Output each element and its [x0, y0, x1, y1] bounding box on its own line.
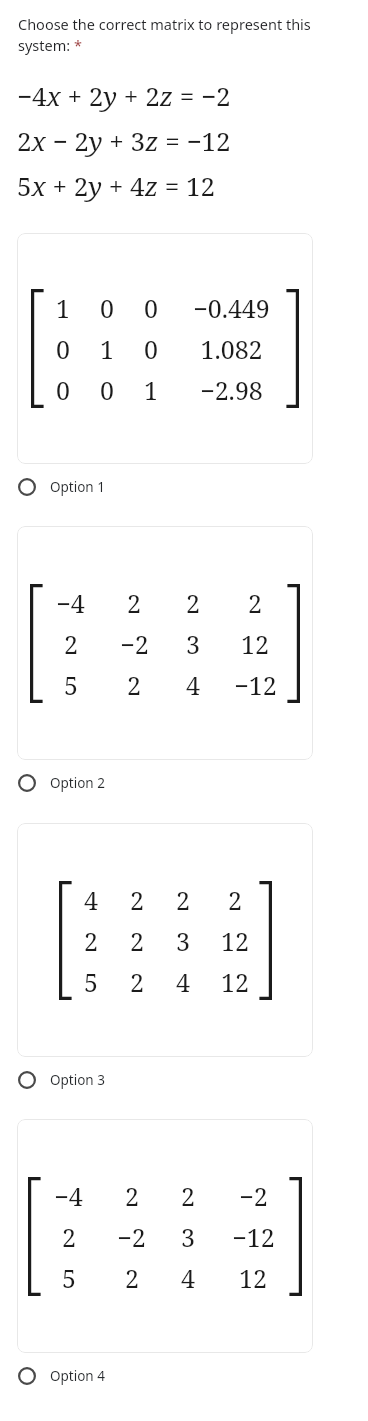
staticText: 2: [130, 965, 144, 999]
staticText: 2: [228, 883, 242, 917]
staticText: 2: [125, 1261, 139, 1295]
staticText: Option 3: [50, 1071, 105, 1089]
staticText: Option 4: [50, 1367, 105, 1385]
staticText: 3: [176, 924, 190, 958]
staticText: 5: [64, 668, 78, 702]
staticText: 5: [84, 965, 98, 999]
staticText: 5: [62, 1261, 76, 1295]
staticText: −2: [120, 627, 149, 661]
staticText: 2: [130, 883, 144, 917]
staticText: Option 2: [50, 774, 105, 792]
staticText: 0: [56, 373, 70, 407]
staticText: 1: [100, 332, 114, 366]
staticText: 0: [56, 332, 70, 366]
staticText: −12: [234, 668, 277, 702]
staticText: 2x − 2y + 3z = −12: [17, 123, 231, 158]
staticText: 0: [144, 291, 158, 325]
staticText: −4: [56, 586, 85, 620]
staticText: 1: [144, 373, 158, 407]
staticText: −2: [117, 1220, 146, 1254]
staticText: 4: [176, 965, 190, 999]
staticText: 2: [181, 1179, 195, 1213]
staticText: 2: [127, 668, 141, 702]
staticText: 0: [100, 373, 114, 407]
staticText: −2.98: [200, 373, 263, 407]
staticText: 2: [186, 586, 200, 620]
staticText: 1.082: [200, 332, 263, 366]
staticText: 2: [127, 586, 141, 620]
staticText: 4: [84, 883, 98, 917]
staticText: 2: [62, 1220, 76, 1254]
staticText: 3: [186, 627, 200, 661]
staticText: 12: [221, 965, 249, 999]
button[interactable]: −4: [17, 1119, 313, 1353]
staticText: 2: [176, 883, 190, 917]
button[interactable]: Option 3: [0, 1063, 368, 1097]
staticText: 2: [130, 924, 144, 958]
staticText: 0: [144, 332, 158, 366]
button[interactable]: Option 2: [0, 766, 368, 800]
staticText: Option 1: [50, 478, 105, 496]
staticText: −12: [232, 1220, 275, 1254]
staticText: 5x + 2y + 4z = 12: [17, 168, 216, 203]
staticText: −0.449: [193, 291, 270, 325]
staticText: 1: [56, 291, 70, 325]
staticText: 2: [84, 924, 98, 958]
staticText: 2: [125, 1179, 139, 1213]
staticText: 0: [100, 291, 114, 325]
button[interactable]: 1: [17, 233, 313, 464]
staticText: 2: [64, 627, 78, 661]
staticText: 12: [221, 924, 249, 958]
staticText: 2: [248, 586, 262, 620]
staticText: −2: [239, 1179, 268, 1213]
button[interactable]: −4: [17, 526, 313, 760]
staticText: 4: [186, 668, 200, 702]
staticText: 4: [181, 1261, 195, 1295]
staticText: 12: [239, 1261, 267, 1295]
staticText: 12: [241, 627, 269, 661]
staticText: −4: [54, 1179, 83, 1213]
button[interactable]: 4: [17, 823, 313, 1057]
staticText: −4x + 2y + 2z = −2: [17, 78, 231, 113]
button[interactable]: Option 4: [0, 1359, 368, 1393]
staticText: Choose the correct matrix to represent t…: [18, 14, 360, 56]
staticText: 3: [181, 1220, 195, 1254]
button[interactable]: Option 1: [0, 470, 368, 504]
